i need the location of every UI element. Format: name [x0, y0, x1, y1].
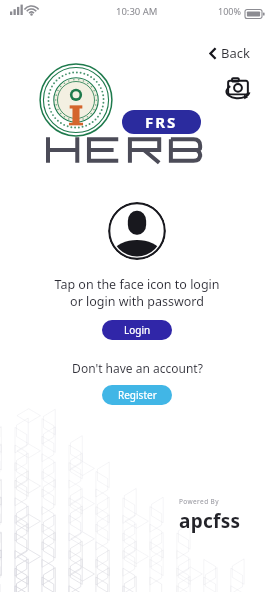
staticText: Tap on the face icon to login or login w…	[54, 276, 220, 310]
staticText: 10:30 AM	[116, 5, 158, 18]
staticText: 100%	[218, 5, 241, 17]
staticText: Register	[118, 388, 157, 402]
staticText: Powered By	[179, 497, 219, 506]
button[interactable]: Face login	[108, 202, 166, 260]
staticText: Don't have an account?	[72, 360, 203, 376]
staticText: Login	[124, 323, 151, 337]
button[interactable]: Switch camera	[221, 75, 255, 109]
button[interactable]: Register	[102, 385, 172, 405]
button[interactable]: Login	[102, 320, 172, 340]
staticText: Back	[221, 44, 250, 62]
staticText: apcfss	[179, 508, 241, 534]
staticText: FRS	[145, 112, 178, 132]
button[interactable]: Back	[205, 41, 254, 65]
